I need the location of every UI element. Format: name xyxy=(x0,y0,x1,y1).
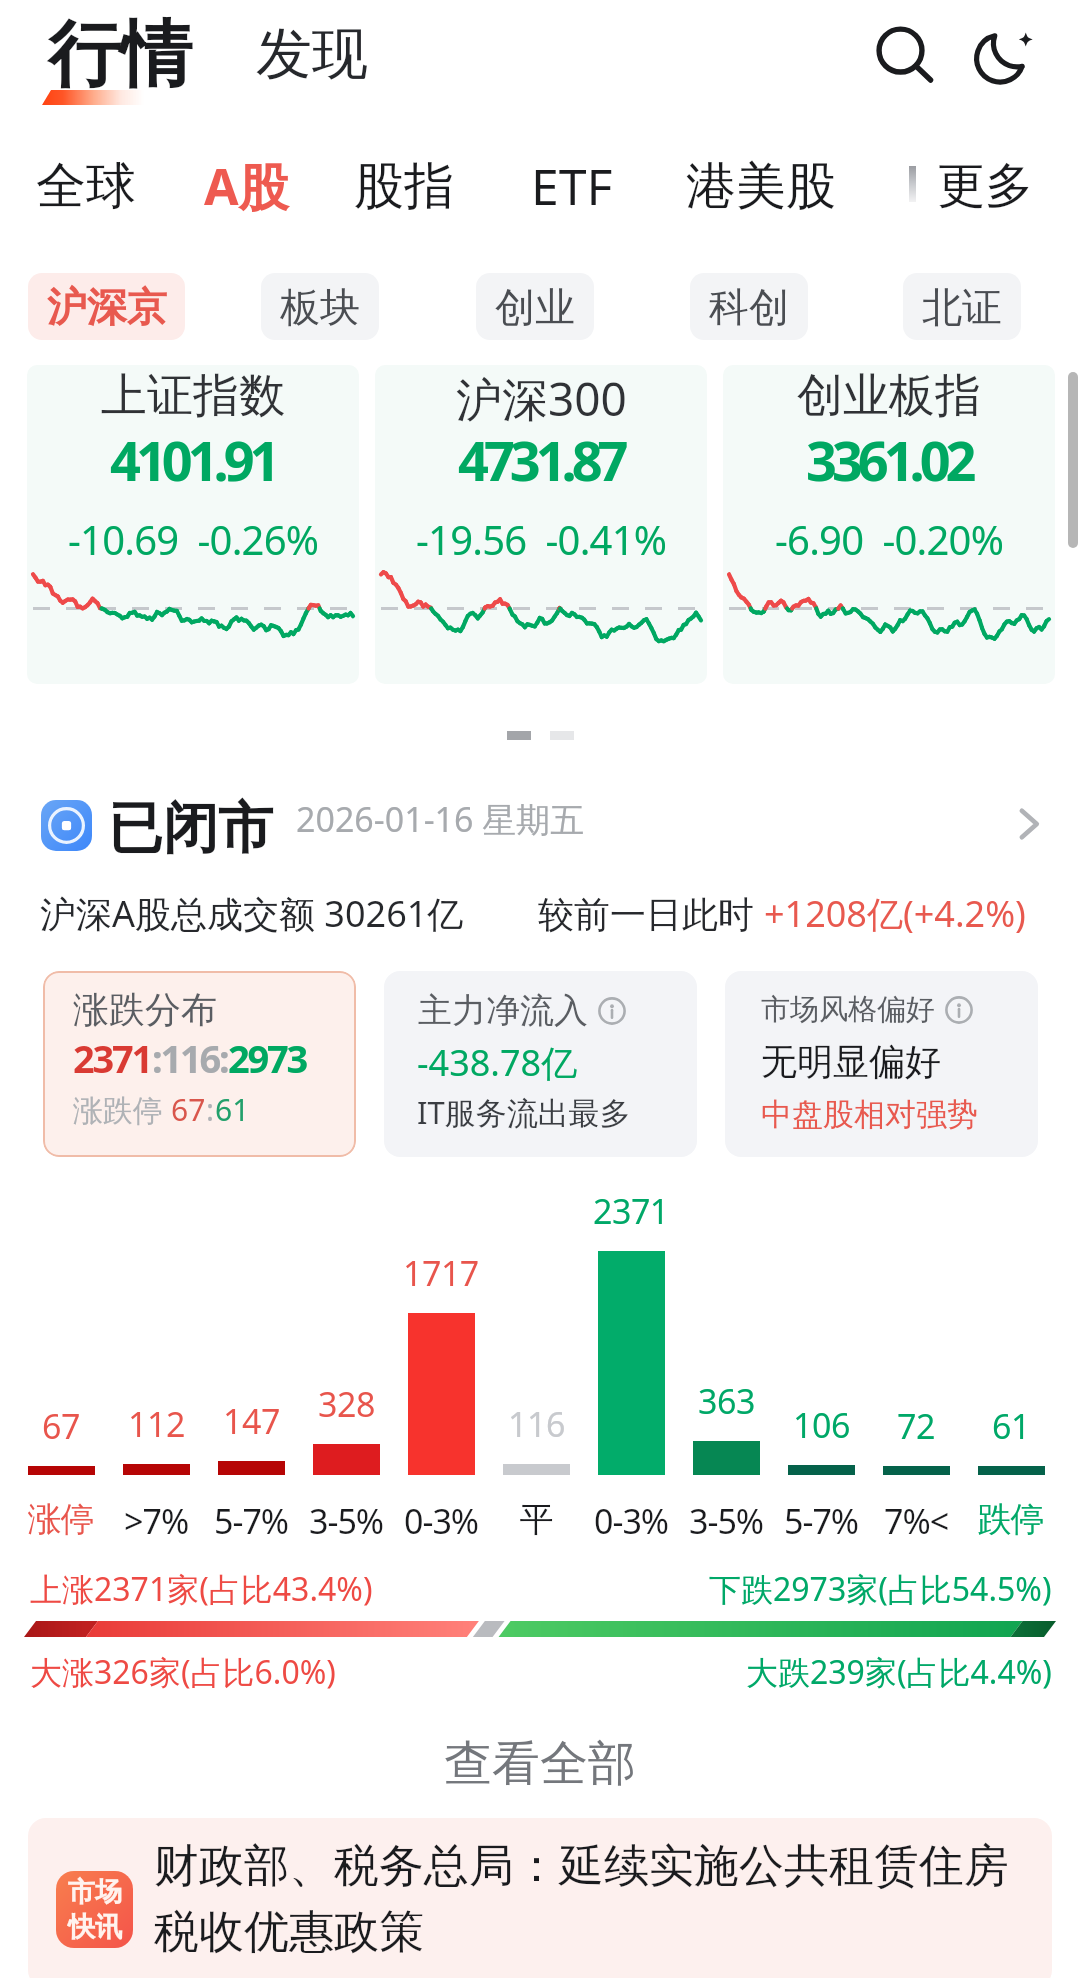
staticText: -10.69 -0.26% xyxy=(68,512,319,566)
staticText: 5-7% xyxy=(214,1498,289,1544)
staticText: 沪深京 xyxy=(47,282,167,332)
staticText: 大跌239家(占比4.4%) xyxy=(746,1650,1052,1694)
staticText: 中盘股相对强势 xyxy=(761,1095,978,1134)
button[interactable]: Page 2 xyxy=(542,715,582,755)
staticText: 平 xyxy=(520,1498,553,1541)
staticText: 上证指数 xyxy=(101,367,285,425)
staticText: 涨停 xyxy=(28,1498,94,1541)
staticText: 106 xyxy=(793,1402,850,1448)
staticText: 61 xyxy=(215,1089,250,1130)
button[interactable]: Gainers and losers distribution chart xyxy=(14,1200,1064,1545)
staticText: >7% xyxy=(124,1498,189,1544)
button[interactable]: 全球 xyxy=(26,139,146,233)
staticText: 市场风格偏好 xyxy=(761,991,935,1028)
button[interactable]: 科创 xyxy=(690,273,808,340)
staticText: 沪深A股总成交额 30261亿 xyxy=(40,889,464,938)
staticText: IT服务流出最多 xyxy=(417,1091,631,1133)
staticText: 2973 xyxy=(228,1032,307,1084)
staticText: 61 xyxy=(992,1403,1030,1449)
staticText: A股 xyxy=(204,152,289,220)
button[interactable]: 沪深京 xyxy=(28,273,185,340)
staticText: 沪深300 xyxy=(456,367,627,430)
staticText: +1208亿(+4.2%) xyxy=(764,889,1026,938)
button[interactable]: 港美股 xyxy=(671,139,851,233)
button[interactable] xyxy=(30,780,1050,866)
staticText: 上涨2371家(占比43.4%) xyxy=(30,1567,373,1611)
staticText: 创业板指 xyxy=(797,367,981,425)
staticText: :116: xyxy=(152,1032,228,1084)
staticText: 下跌2973家(占比54.5%) xyxy=(709,1567,1052,1611)
staticText: -438.78亿 xyxy=(417,1038,578,1087)
button[interactable]: 更多 xyxy=(930,139,1040,233)
button[interactable]: ETF xyxy=(509,139,634,233)
staticText: 市场 xyxy=(68,1875,122,1909)
staticText: 72 xyxy=(897,1403,935,1449)
staticText: 财政部、税务总局：延续实施公共租赁住房税收优惠政策 xyxy=(154,1838,1044,1961)
staticText: 更多 xyxy=(937,156,1033,216)
staticText: 2371 xyxy=(73,1032,152,1084)
staticText: 112 xyxy=(128,1401,185,1447)
staticText: 查看全部 xyxy=(444,1734,636,1794)
staticText: 2026-01-16 星期五 xyxy=(296,796,585,842)
staticText: 0-3% xyxy=(404,1498,479,1544)
staticText: 板块 xyxy=(280,282,360,332)
staticText: 1717 xyxy=(403,1250,479,1296)
staticText: 涨跌停 xyxy=(73,1089,171,1130)
staticText: 港美股 xyxy=(686,155,836,218)
button[interactable]: 发现 xyxy=(238,6,386,106)
button[interactable]: 北证 xyxy=(903,273,1021,340)
staticText: 创业 xyxy=(495,282,575,332)
staticText: -6.90 -0.20% xyxy=(775,512,1004,566)
button[interactable]: 查看全部 xyxy=(340,1720,740,1808)
button[interactable]: 沪深300 xyxy=(375,365,707,684)
staticText: 3361.02 xyxy=(806,423,972,497)
staticText: 4101.91 xyxy=(110,423,276,497)
staticText: 67 xyxy=(42,1403,80,1449)
staticText: 3-5% xyxy=(689,1498,764,1544)
button[interactable]: Page 1 xyxy=(499,715,539,755)
staticText: 较前一日此时 xyxy=(538,889,764,938)
button[interactable]: 上证指数 xyxy=(27,365,359,684)
staticText: 3-5% xyxy=(309,1498,384,1544)
staticText: 股指 xyxy=(354,155,454,218)
staticText: 4731.87 xyxy=(458,423,624,497)
button[interactable]: 股指 xyxy=(344,139,464,233)
button[interactable]: 板块 xyxy=(261,273,379,340)
staticText: 大涨326家(占比6.0%) xyxy=(30,1650,336,1694)
staticText: 科创 xyxy=(709,282,789,332)
staticText: : xyxy=(206,1089,215,1130)
button[interactable]: 市场 xyxy=(28,1818,1052,1978)
staticText: 无明显偏好 xyxy=(761,1039,941,1084)
button[interactable]: 创业板指 xyxy=(723,365,1055,684)
button[interactable]: Open market detail xyxy=(1000,796,1056,852)
button[interactable]: Search xyxy=(862,14,948,100)
staticText: 北证 xyxy=(922,282,1002,332)
staticText: 67 xyxy=(171,1089,206,1130)
staticText: -19.56 -0.41% xyxy=(416,512,667,566)
staticText: 跌停 xyxy=(978,1498,1044,1541)
button[interactable]: 行情 xyxy=(34,6,192,106)
staticText: 全球 xyxy=(36,155,136,218)
staticText: 5-7% xyxy=(784,1498,859,1544)
staticText: 116 xyxy=(508,1401,565,1447)
staticText: 0-3% xyxy=(594,1498,669,1544)
button[interactable]: 涨跌分布 xyxy=(43,971,356,1157)
button[interactable]: Dark mode xyxy=(961,14,1047,100)
staticText: ETF xyxy=(531,152,613,220)
button[interactable]: 创业 xyxy=(476,273,594,340)
staticText: 147 xyxy=(223,1398,280,1444)
staticText: 328 xyxy=(318,1381,375,1427)
staticText: 主力净流入 xyxy=(418,989,588,1032)
staticText: 363 xyxy=(698,1378,755,1424)
staticText: 涨跌分布 xyxy=(73,987,217,1032)
button[interactable]: A股 xyxy=(186,139,306,233)
staticText: 2371 xyxy=(593,1188,669,1234)
button[interactable]: 市场风格偏好 xyxy=(725,971,1038,1157)
button[interactable]: 主力净流入 xyxy=(384,971,697,1157)
staticText: 快讯 xyxy=(68,1910,122,1944)
staticText: 7%< xyxy=(884,1498,949,1544)
staticText: 发现 xyxy=(256,19,368,90)
staticText: 行情 xyxy=(48,10,192,101)
staticText: 已闭市 xyxy=(108,794,273,863)
